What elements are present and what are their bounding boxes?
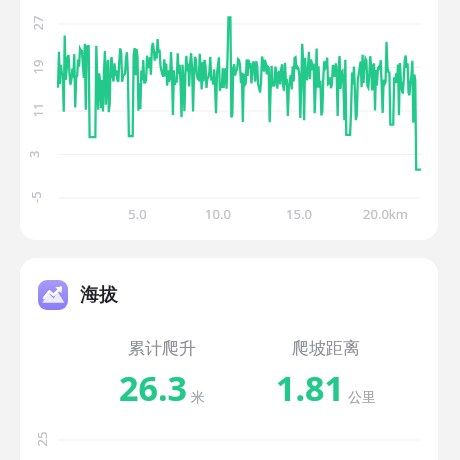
- staticText: 爬坡距离: [292, 338, 360, 359]
- staticText: 累计爬升: [128, 338, 196, 359]
- staticText: 公里: [348, 389, 376, 407]
- staticText: 26.3: [119, 365, 187, 411]
- button[interactable]: Altitude: [38, 280, 118, 310]
- staticText: 3: [25, 150, 43, 158]
- staticText: 19: [28, 59, 46, 74]
- staticText: 1.81: [276, 365, 344, 411]
- staticText: -5: [27, 191, 45, 203]
- staticText: 25: [32, 431, 50, 446]
- staticText: 10.0: [205, 205, 231, 223]
- other: Altitude: [38, 280, 68, 310]
- staticText: 27: [28, 15, 46, 30]
- staticText: 5.0: [128, 205, 147, 223]
- button[interactable]: Altitude: [20, 258, 438, 460]
- staticText: 15.0: [286, 205, 312, 223]
- staticText: 海拔: [80, 283, 118, 307]
- button[interactable]: 累计爬升: [80, 338, 244, 411]
- staticText: 11: [28, 102, 46, 117]
- staticText: 20.0km: [363, 205, 408, 223]
- button[interactable]: [20, 0, 438, 240]
- button[interactable]: 爬坡距离: [244, 338, 408, 411]
- staticText: 米: [191, 389, 205, 407]
